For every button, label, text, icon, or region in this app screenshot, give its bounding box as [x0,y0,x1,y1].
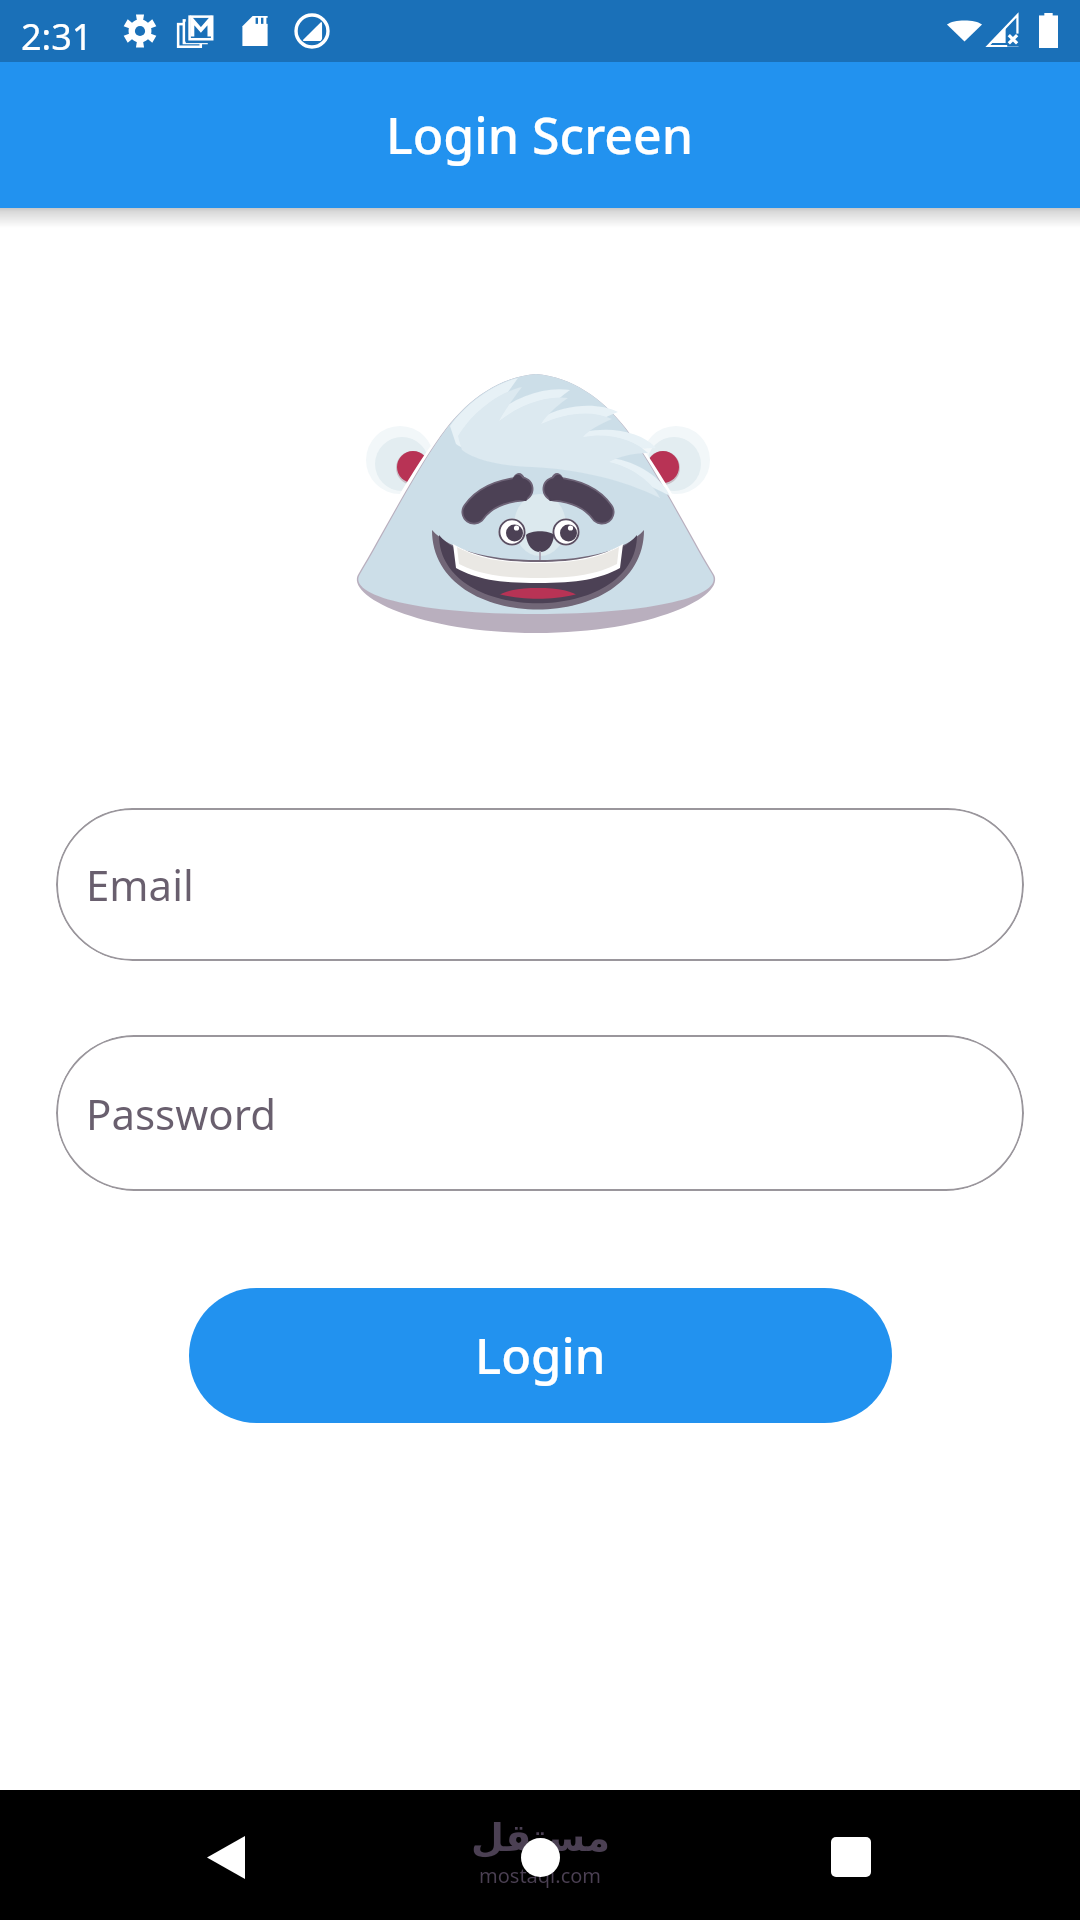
button[interactable]: Home [465,1792,615,1920]
staticText: Password [86,1085,276,1142]
button[interactable]: Password [56,1035,1024,1191]
staticText: Email [86,856,194,913]
staticText: 2:31 [21,12,93,61]
button[interactable]: Login [189,1288,892,1423]
staticText: Login Screen [386,101,694,169]
button[interactable]: Email [56,808,1024,961]
button[interactable]: Recents [776,1792,926,1920]
staticText: مستقل [471,1816,610,1860]
button[interactable]: Back [151,1792,301,1920]
staticText: Login [475,1322,606,1389]
staticText: mostaql.com [479,1862,602,1889]
